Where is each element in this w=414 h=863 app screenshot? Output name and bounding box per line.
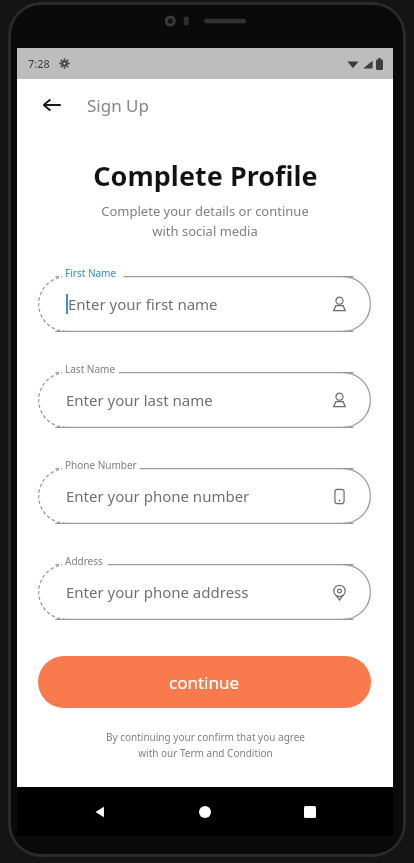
staticText: Enter your phone address xyxy=(66,582,249,602)
button[interactable]: Phone Number xyxy=(38,458,371,524)
button[interactable]: continue xyxy=(38,656,371,708)
staticText: Address xyxy=(65,554,103,568)
staticText: By continuing your confirm that you agre… xyxy=(106,730,305,759)
button[interactable]: Back xyxy=(78,790,122,834)
staticText: 7:28 xyxy=(28,56,50,71)
staticText: Enter your phone number xyxy=(66,486,250,506)
button[interactable]: Home xyxy=(183,790,227,834)
button[interactable]: Recent apps xyxy=(288,790,332,834)
staticText: Phone Number xyxy=(65,458,137,472)
staticText: First Name xyxy=(65,266,117,280)
staticText: Enter your first name xyxy=(68,294,218,314)
button[interactable]: Last Name xyxy=(38,362,371,428)
staticText: Sign Up xyxy=(87,94,149,117)
staticText: Complete your details or continue with s… xyxy=(101,202,309,240)
button[interactable]: First Name xyxy=(38,266,371,332)
button[interactable]: Back xyxy=(35,88,69,122)
staticText: Complete Profile xyxy=(93,157,318,194)
staticText: Last Name xyxy=(65,362,116,376)
button[interactable]: Address xyxy=(38,554,371,620)
staticText: Enter your last name xyxy=(66,390,213,410)
staticText: continue xyxy=(169,671,240,694)
